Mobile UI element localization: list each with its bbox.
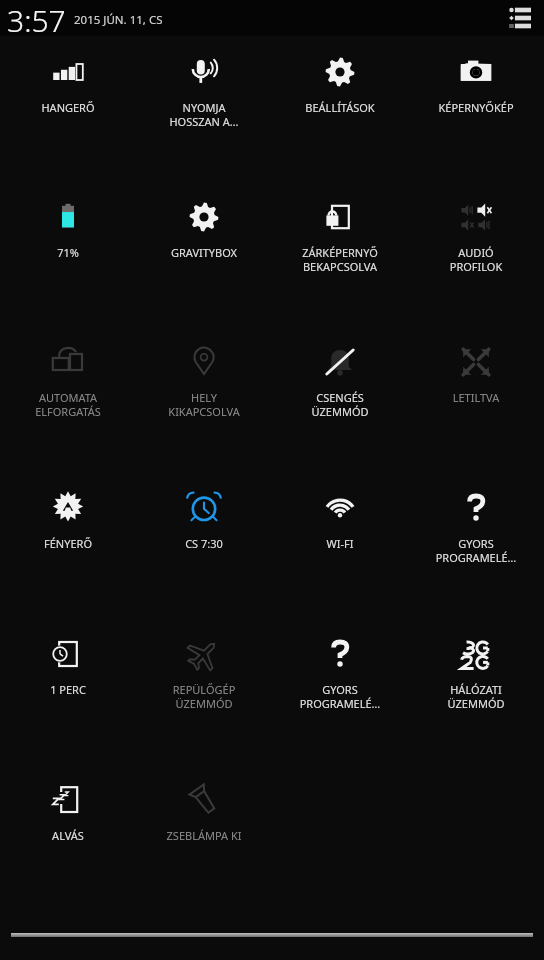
staticText: ZSEBLÁMPA KI <box>138 828 270 843</box>
staticText: 1 PERC <box>2 682 134 697</box>
button[interactable]: 71% <box>0 181 136 326</box>
button[interactable]: KÉPERNYŐKÉP <box>408 36 544 181</box>
button[interactable]: HANGERŐ <box>0 36 136 181</box>
button[interactable]: REPÜLŐGÉP ÜZEMMÓD <box>136 618 272 764</box>
button[interactable]: 1 PERC <box>0 618 136 764</box>
staticText: ALVÁS <box>2 828 134 843</box>
button[interactable]: Notifications list <box>502 1 536 35</box>
staticText: REPÜLŐGÉP ÜZEMMÓD <box>138 682 270 711</box>
button[interactable]: CS 7:30 <box>136 472 272 618</box>
staticText: 2015 JÚN. 11, CS <box>74 12 163 28</box>
button[interactable]: FÉNYERŐ <box>0 472 136 618</box>
button[interactable]: WI-FI <box>272 472 408 618</box>
staticText: 3:57 <box>7 0 66 36</box>
staticText: KÉPERNYŐKÉP <box>410 100 542 115</box>
staticText: GRAVITYBOX <box>138 245 270 260</box>
staticText: HÁLÓZATI ÜZEMMÓD <box>410 682 542 711</box>
button[interactable]: ALVÁS <box>0 764 136 910</box>
staticText: AUTOMATA ELFORGATÁS <box>2 390 134 419</box>
button[interactable]: GRAVITYBOX <box>136 181 272 326</box>
staticText: GYORS PROGRAMELÉ… <box>410 536 542 565</box>
button[interactable]: ZSEBLÁMPA KI <box>136 764 272 910</box>
button[interactable]: HÁLÓZATI ÜZEMMÓD <box>408 618 544 764</box>
button[interactable]: NYOMJA HOSSZAN A… <box>136 36 272 181</box>
staticText: HELY KIKAPCSOLVA <box>138 390 270 419</box>
button[interactable]: CSENGÉS ÜZEMMÓD <box>272 326 408 472</box>
staticText: AUDIÓ PROFILOK <box>410 245 542 274</box>
button[interactable]: AUDIÓ PROFILOK <box>408 181 544 326</box>
staticText: 71% <box>2 245 134 260</box>
staticText: GYORS PROGRAMELÉ… <box>274 682 406 711</box>
button[interactable]: LETILTVA <box>408 326 544 472</box>
staticText: FÉNYERŐ <box>2 536 134 551</box>
button[interactable]: ZÁRKÉPERNYŐ BEKAPCSOLVA <box>272 181 408 326</box>
staticText: NYOMJA HOSSZAN A… <box>138 100 270 129</box>
staticText: BEÁLLÍTÁSOK <box>274 100 406 115</box>
staticText: CSENGÉS ÜZEMMÓD <box>274 390 406 419</box>
button[interactable]: HELY KIKAPCSOLVA <box>136 326 272 472</box>
button[interactable]: BEÁLLÍTÁSOK <box>272 36 408 181</box>
staticText: WI-FI <box>274 536 406 551</box>
button[interactable]: GYORS PROGRAMELÉ… <box>408 472 544 618</box>
staticText: LETILTVA <box>410 390 542 405</box>
button[interactable]: AUTOMATA ELFORGATÁS <box>0 326 136 472</box>
staticText: HANGERŐ <box>2 100 134 115</box>
staticText: CS 7:30 <box>138 536 270 551</box>
staticText: ZÁRKÉPERNYŐ BEKAPCSOLVA <box>274 245 406 274</box>
button[interactable]: GYORS PROGRAMELÉ… <box>272 618 408 764</box>
